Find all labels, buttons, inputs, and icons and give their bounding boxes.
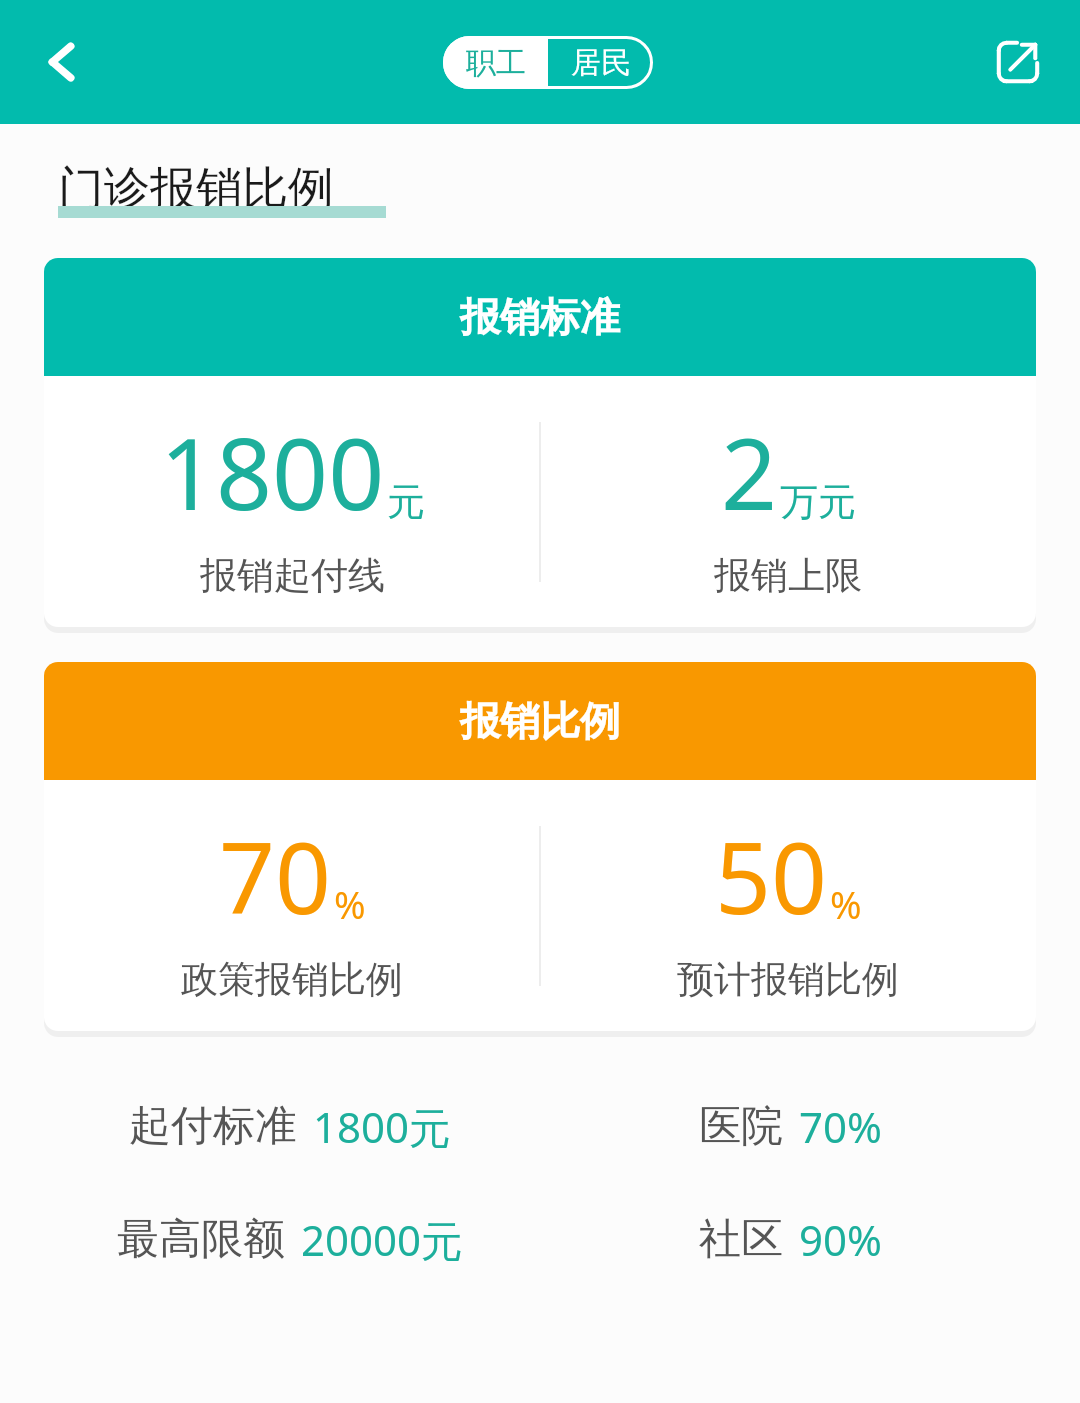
- staticText: 20000元: [301, 1211, 464, 1268]
- staticText: 元: [387, 478, 425, 526]
- staticText: 政策报销比例: [181, 956, 403, 1003]
- staticText: 70: [219, 809, 332, 942]
- staticText: 社区: [699, 1213, 783, 1266]
- staticText: 2: [721, 405, 778, 538]
- staticText: 报销标准: [460, 292, 620, 342]
- staticText: 门诊报销比例: [58, 160, 334, 218]
- staticText: 起付标准: [129, 1100, 297, 1153]
- staticText: 预计报销比例: [677, 956, 899, 1003]
- staticText: 报销比例: [460, 696, 620, 746]
- staticText: 最高限额: [117, 1213, 285, 1266]
- button[interactable]: Back: [14, 14, 110, 110]
- staticText: 报销上限: [714, 552, 862, 599]
- staticText: 70%: [799, 1098, 882, 1155]
- staticText: 医院: [699, 1100, 783, 1153]
- staticText: 报销起付线: [200, 552, 385, 599]
- button[interactable]: 报销标准: [44, 258, 1036, 627]
- staticText: 职工: [466, 44, 526, 82]
- button[interactable]: 职工: [443, 36, 548, 89]
- staticText: 1800: [160, 405, 385, 538]
- button[interactable]: 居民: [548, 36, 653, 89]
- staticText: %: [830, 878, 862, 930]
- button[interactable]: 报销比例: [44, 662, 1036, 1031]
- staticText: 90%: [799, 1211, 882, 1268]
- staticText: 50: [715, 809, 828, 942]
- staticText: 居民: [571, 44, 631, 82]
- button[interactable]: Share: [972, 16, 1064, 108]
- staticText: 1800元: [313, 1098, 452, 1155]
- staticText: 万元: [780, 478, 856, 526]
- staticText: %: [334, 878, 366, 930]
